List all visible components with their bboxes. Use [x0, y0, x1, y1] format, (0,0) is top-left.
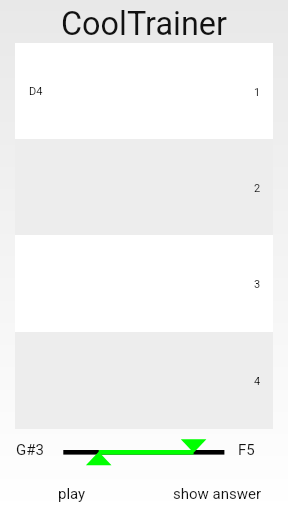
button[interactable]: 2 — [15, 139, 273, 235]
staticText: 4 — [254, 375, 261, 388]
button[interactable]: 4 — [15, 332, 273, 429]
staticText: 1 — [254, 86, 261, 99]
staticText: show answer — [173, 485, 262, 503]
staticText: 2 — [254, 182, 261, 195]
staticText: 3 — [254, 278, 261, 291]
staticText: F5 — [238, 441, 255, 459]
staticText: G#3 — [16, 441, 44, 459]
staticText: play — [58, 485, 86, 503]
button[interactable]: Note range slider, G#3 to F5 — [0, 429, 288, 473]
staticText: CoolTrainer — [61, 5, 227, 43]
button[interactable]: show answer — [144, 473, 288, 512]
staticText: D4 — [29, 85, 43, 98]
button[interactable]: play — [0, 473, 144, 512]
button[interactable]: D4 — [15, 43, 273, 139]
button[interactable]: 3 — [15, 235, 273, 332]
